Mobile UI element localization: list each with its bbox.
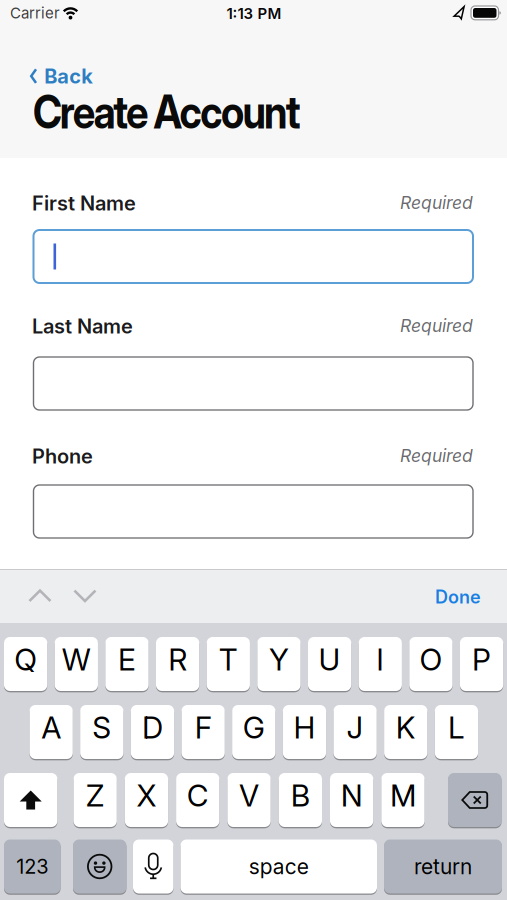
staticText: I <box>376 641 384 678</box>
staticText: G <box>243 709 265 746</box>
button[interactable]: W <box>55 636 98 692</box>
button[interactable]: Emoji <box>73 838 126 894</box>
staticText: J <box>347 709 364 746</box>
button[interactable]: X <box>125 772 168 828</box>
button[interactable]: Done <box>381 586 481 608</box>
button[interactable]: E <box>105 636 149 692</box>
staticText: First Name <box>32 191 136 215</box>
staticText: M <box>390 777 416 814</box>
button[interactable]: A <box>29 704 73 760</box>
staticText: L <box>448 709 465 746</box>
button[interactable]: space <box>180 838 377 894</box>
staticText: Z <box>86 777 105 814</box>
staticText: U <box>319 641 341 678</box>
button[interactable]: L <box>435 704 478 760</box>
button[interactable]: return <box>384 838 502 894</box>
staticText: C <box>187 777 209 814</box>
staticText: N <box>341 777 363 814</box>
button[interactable]: T <box>207 636 250 692</box>
staticText: H <box>293 709 315 746</box>
button[interactable]: C <box>176 772 219 828</box>
button[interactable]: 123 <box>4 838 60 894</box>
button[interactable]: First Name text field <box>33 230 473 283</box>
button[interactable]: Next field <box>68 581 102 611</box>
staticText: Create Account <box>33 84 340 140</box>
button[interactable]: H <box>283 704 326 760</box>
staticText: A <box>41 709 61 746</box>
button[interactable]: Shift <box>4 772 57 828</box>
staticText: Back <box>44 64 93 88</box>
staticText: D <box>142 709 163 746</box>
staticText: Required <box>400 315 473 336</box>
staticText: Required <box>400 192 473 213</box>
button[interactable]: Q <box>4 636 47 692</box>
staticText: S <box>92 709 111 746</box>
button[interactable]: Back <box>30 64 93 88</box>
staticText: E <box>118 641 136 678</box>
staticText: 1:13 PM <box>226 4 281 23</box>
staticText: Carrier <box>10 4 60 22</box>
button[interactable]: Previous field <box>23 581 57 611</box>
button[interactable]: Phone text field <box>33 485 473 538</box>
staticText: Q <box>14 641 37 678</box>
staticText: R <box>168 641 187 678</box>
staticText: Required <box>400 445 473 466</box>
staticText: V <box>239 777 259 814</box>
button[interactable]: O <box>409 636 453 692</box>
button[interactable]: M <box>381 772 425 828</box>
button[interactable]: R <box>156 636 199 692</box>
staticText: return <box>414 854 472 879</box>
button[interactable]: P <box>460 636 503 692</box>
staticText: Y <box>269 641 289 678</box>
staticText: Last Name <box>32 314 133 338</box>
button[interactable]: Y <box>257 636 301 692</box>
button[interactable]: B <box>279 772 322 828</box>
button[interactable]: J <box>333 704 377 760</box>
button[interactable]: Dictate <box>133 838 173 894</box>
button[interactable]: N <box>330 772 373 828</box>
button[interactable]: F <box>181 704 225 760</box>
button[interactable]: Z <box>73 772 117 828</box>
staticText: P <box>472 641 491 678</box>
button[interactable]: U <box>308 636 351 692</box>
button[interactable]: I <box>359 636 402 692</box>
staticText: W <box>62 641 91 678</box>
staticText: space <box>249 854 309 879</box>
staticText: X <box>136 777 156 814</box>
staticText: Phone <box>32 444 93 468</box>
staticText: K <box>396 709 416 746</box>
button[interactable]: Delete <box>448 772 501 828</box>
staticText: Done <box>435 586 481 608</box>
staticText: 123 <box>16 854 48 879</box>
button[interactable]: Last Name text field <box>33 357 473 410</box>
button[interactable]: D <box>131 704 174 760</box>
button[interactable]: S <box>80 704 123 760</box>
staticText: T <box>219 641 238 678</box>
button[interactable]: G <box>232 704 275 760</box>
button[interactable]: K <box>384 704 427 760</box>
staticText: B <box>291 777 310 814</box>
staticText: O <box>419 641 442 678</box>
staticText: F <box>195 709 212 746</box>
button[interactable]: V <box>227 772 271 828</box>
